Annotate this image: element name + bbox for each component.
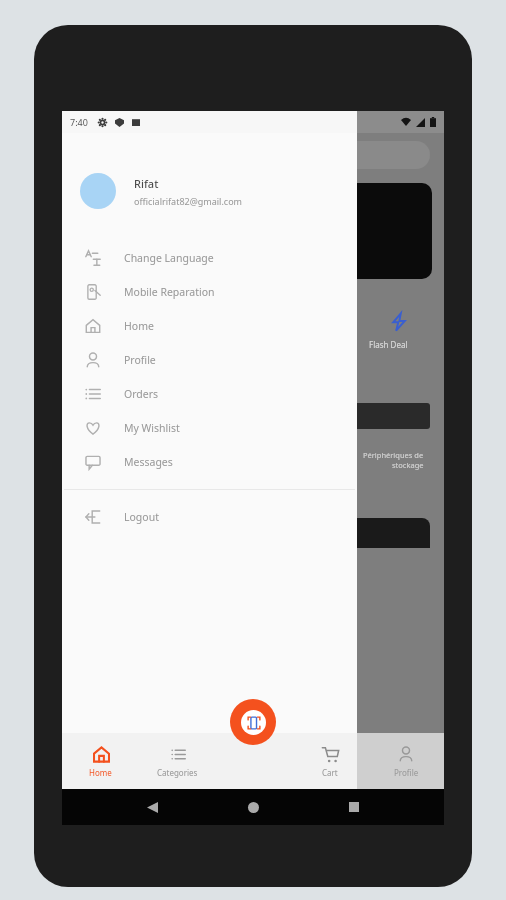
button[interactable]: Orders: [62, 377, 357, 411]
button[interactable]: Change Language: [62, 241, 357, 275]
staticText: Categories: [157, 767, 198, 778]
staticText: Messages: [124, 455, 173, 469]
button[interactable]: Categories: [139, 733, 216, 789]
staticText: Mobile Reparation: [124, 285, 215, 299]
staticText: My Wishlist: [124, 421, 180, 435]
staticText: officialrifat82@gmail.com: [134, 195, 243, 207]
staticText: Home: [124, 319, 154, 333]
staticText: Cart: [322, 767, 338, 778]
staticText: Orders: [124, 387, 159, 401]
button[interactable]: Mobile Reparation: [62, 275, 357, 309]
staticText: Périphériques de: [363, 450, 424, 460]
staticText: Logout: [124, 510, 159, 524]
button[interactable]: Scan product: [230, 699, 276, 745]
button[interactable]: Profile: [62, 343, 357, 377]
staticText: 7:40: [70, 116, 88, 128]
staticText: Rifat: [134, 176, 159, 191]
staticText: Profile: [394, 767, 419, 778]
button[interactable]: Recent apps: [343, 796, 365, 818]
button[interactable]: Rifat: [62, 163, 357, 219]
staticText: Flash Deal: [369, 339, 408, 350]
button[interactable]: Home: [242, 796, 264, 818]
button[interactable]: Back: [141, 796, 163, 818]
button[interactable]: Messages: [62, 445, 357, 479]
button[interactable]: Home: [62, 733, 139, 789]
staticText: Home: [89, 767, 112, 778]
button[interactable]: Logout: [62, 500, 357, 534]
staticText: Profile: [124, 353, 156, 367]
button[interactable]: Home: [62, 309, 357, 343]
staticText: stockage: [392, 460, 424, 470]
button[interactable]: Cart: [292, 733, 368, 789]
button[interactable]: Profile: [368, 733, 444, 789]
button[interactable]: My Wishlist: [62, 411, 357, 445]
staticText: Change Language: [124, 251, 214, 265]
